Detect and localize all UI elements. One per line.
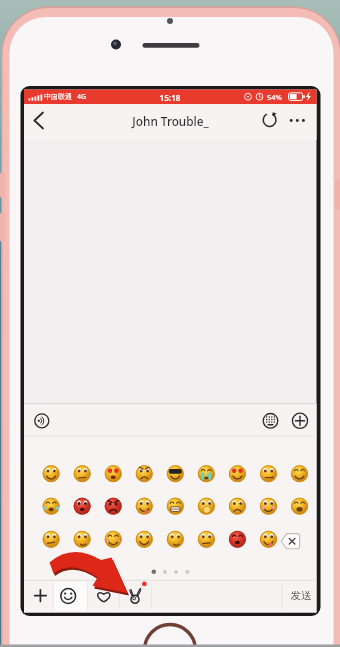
staticText: 发送 (288, 589, 314, 647)
button[interactable] (101, 527, 125, 551)
button[interactable] (256, 495, 280, 519)
button[interactable] (194, 527, 218, 551)
button[interactable] (132, 495, 156, 519)
button[interactable] (288, 409, 312, 433)
button[interactable] (256, 462, 280, 486)
button[interactable] (70, 495, 94, 519)
button[interactable] (225, 495, 249, 519)
button[interactable] (256, 527, 280, 551)
button[interactable] (288, 495, 312, 519)
button[interactable] (39, 495, 63, 519)
button[interactable] (120, 582, 151, 610)
button[interactable] (28, 106, 52, 134)
button[interactable] (132, 462, 156, 486)
button[interactable] (225, 462, 249, 486)
button[interactable] (194, 495, 218, 519)
button[interactable] (39, 527, 63, 551)
button[interactable] (286, 108, 312, 132)
button[interactable] (30, 409, 54, 433)
button[interactable] (288, 527, 312, 551)
button[interactable] (163, 527, 187, 551)
button[interactable] (194, 462, 218, 486)
button[interactable] (88, 582, 119, 610)
button[interactable] (132, 527, 156, 551)
button[interactable] (163, 462, 187, 486)
button[interactable] (39, 462, 63, 486)
staticText: 54% (267, 92, 289, 647)
button[interactable] (258, 108, 282, 132)
staticText: John Trouble_ (110, 113, 231, 647)
button[interactable] (101, 495, 125, 519)
button[interactable] (101, 462, 125, 486)
button[interactable] (288, 462, 312, 486)
staticText: 中国联通 (44, 92, 94, 647)
button[interactable] (70, 527, 94, 551)
button[interactable] (54, 582, 87, 610)
button[interactable] (225, 527, 249, 551)
button[interactable] (163, 495, 187, 519)
staticText: 15:18 (150, 92, 190, 647)
button[interactable] (283, 582, 316, 610)
staticText: 4G (77, 92, 97, 647)
button[interactable] (70, 462, 94, 486)
button[interactable] (258, 409, 282, 433)
button[interactable] (28, 582, 54, 610)
